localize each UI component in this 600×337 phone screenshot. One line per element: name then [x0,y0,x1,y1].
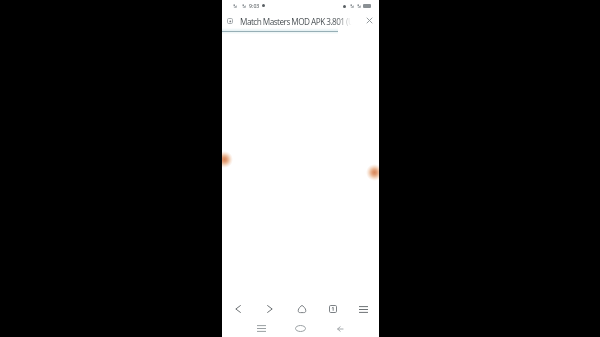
button[interactable]: Tabs [317,296,348,322]
staticText: Match Masters MOD APK 3.801 (Unlimited M… [240,16,360,27]
button[interactable]: Home [286,296,317,322]
button[interactable]: Site information [222,13,237,28]
button[interactable]: Forward [254,296,286,322]
button[interactable]: Back [222,296,254,322]
button[interactable]: Menu [348,296,379,322]
button[interactable]: Recents [242,322,281,335]
button[interactable]: Home [281,322,320,335]
staticText: 9:03 [249,2,260,9]
button[interactable]: Stop loading [360,13,379,28]
button[interactable]: Back [320,322,359,335]
